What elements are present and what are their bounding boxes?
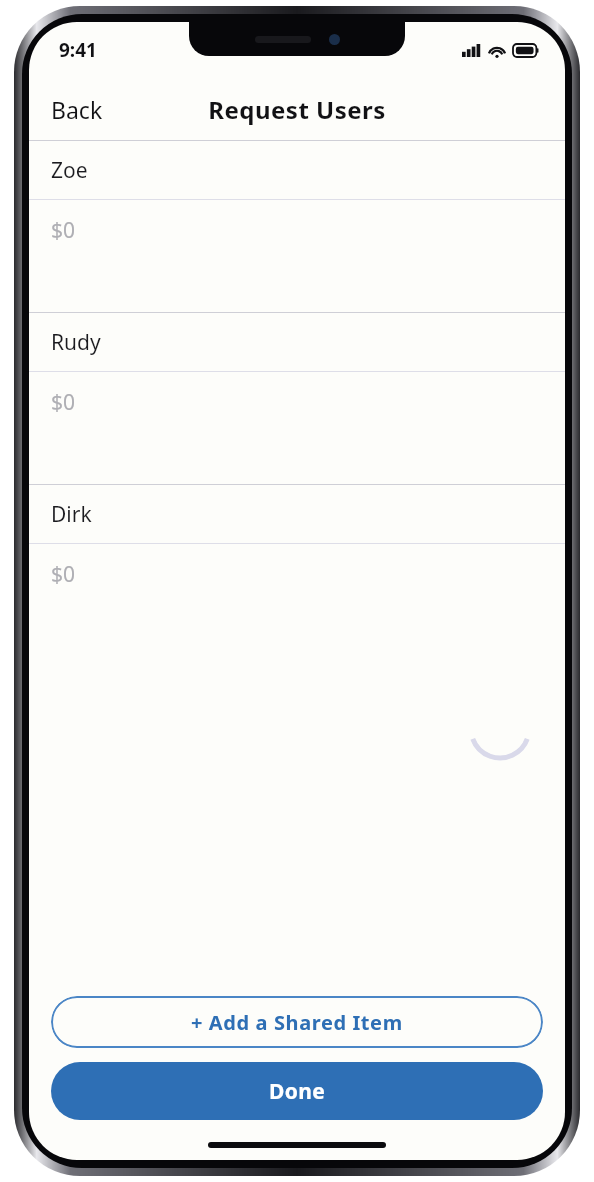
- staticText: Dirk: [51, 500, 92, 529]
- staticText: Zoe: [51, 156, 88, 185]
- staticText: $0: [51, 560, 76, 589]
- staticText: $0: [51, 388, 76, 417]
- staticText: Request Users: [208, 93, 386, 126]
- button[interactable]: Zoe: [29, 141, 565, 312]
- button[interactable]: Dirk: [29, 485, 565, 656]
- button[interactable]: Rudy: [29, 313, 565, 484]
- staticText: Done: [269, 1077, 326, 1106]
- button[interactable]: Back: [39, 86, 115, 133]
- button[interactable]: Done: [51, 1062, 543, 1120]
- staticText: + Add a Shared Item: [191, 1009, 403, 1036]
- staticText: 9:41: [59, 37, 97, 63]
- button[interactable]: + Add a Shared Item: [51, 996, 543, 1048]
- staticText: Rudy: [51, 328, 101, 357]
- staticText: $0: [51, 216, 76, 245]
- staticText: Back: [51, 94, 103, 125]
